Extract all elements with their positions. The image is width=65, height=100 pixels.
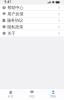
staticText: 帮助中心 [7,5,23,10]
button[interactable]: ? [0,5,64,11]
staticText: 隐私政策 [7,24,23,29]
staticText: 服务协议 [7,18,23,23]
staticText: 首页 [8,95,14,98]
button[interactable]: i [0,30,64,36]
staticText: 9:41 [4,0,11,4]
button[interactable]: 首页 [0,89,21,100]
button[interactable]: 我的 [43,89,64,100]
button[interactable]: 用户反馈 [0,11,64,17]
staticText: 关于 [7,31,15,36]
staticText: 消息 [29,95,35,98]
button[interactable]: 隐私政策 [0,24,64,30]
staticText: 用户反馈 [7,11,23,16]
staticText: 我的 [50,95,56,98]
staticText: i [4,32,5,35]
button[interactable]: 服务协议 [0,17,64,24]
staticText: ? [4,6,5,9]
button[interactable]: 消息 [21,89,43,100]
